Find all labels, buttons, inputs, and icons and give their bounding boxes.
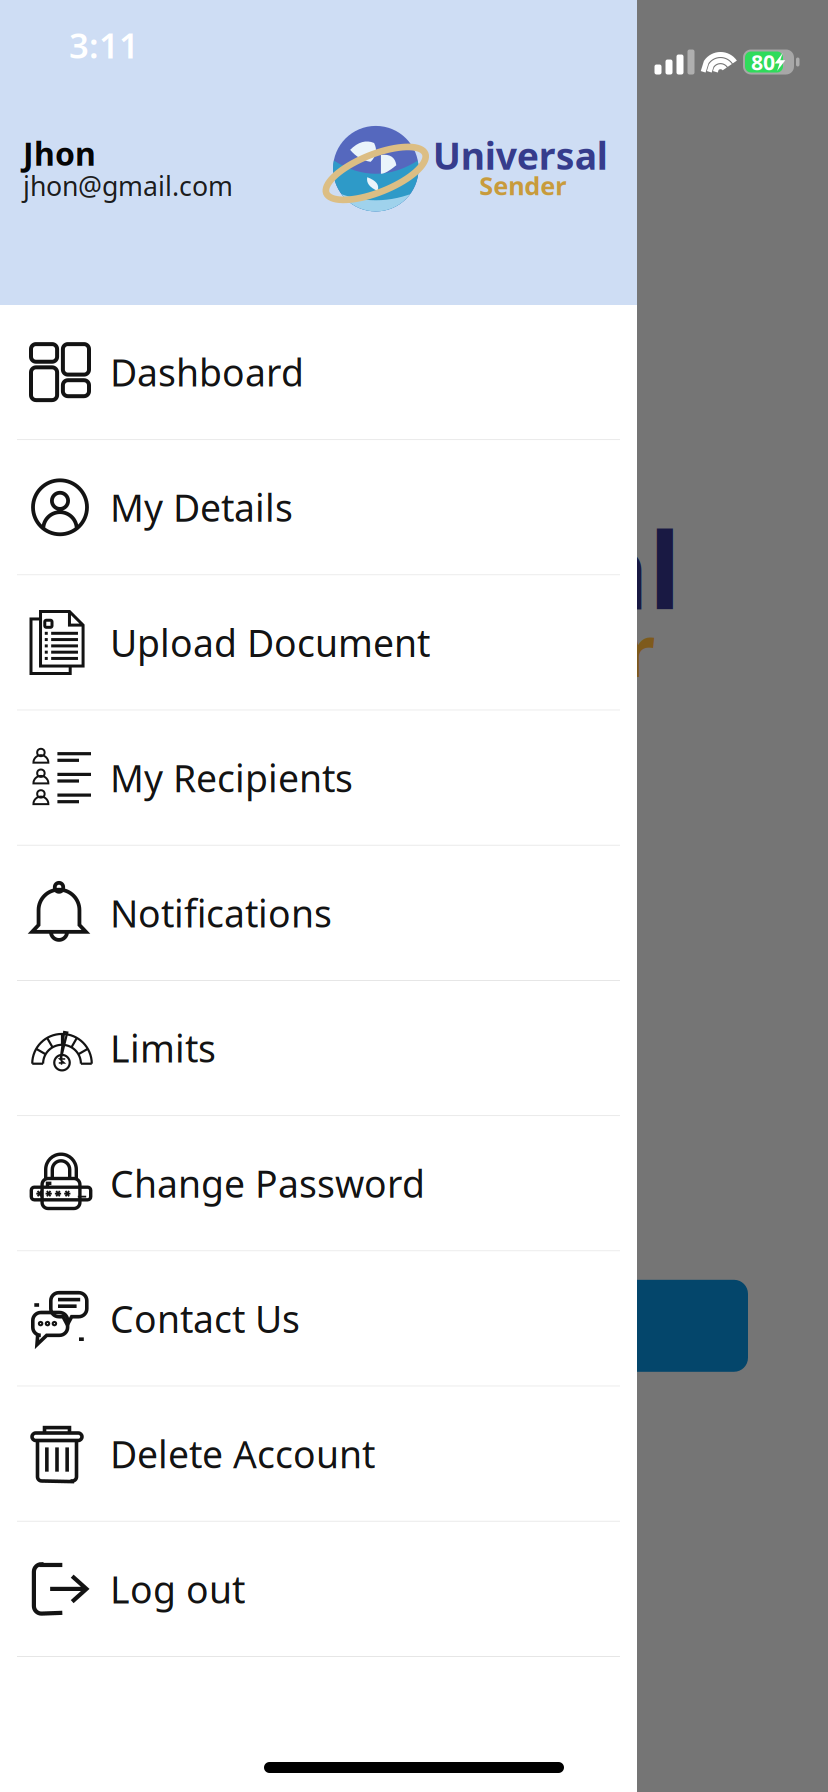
staticText: Universal [176, 497, 681, 639]
staticText: Notifications [110, 888, 332, 938]
button[interactable]: My Recipients [0, 711, 637, 846]
staticText: Send money at the best rates [93, 864, 554, 908]
button[interactable]: SIGN UP [392, 1280, 748, 1372]
staticText: Dashboard [110, 347, 304, 397]
staticText: Change Password [110, 1158, 425, 1208]
staticText: Jhon [23, 132, 96, 174]
staticText: jhon@gmail.com [23, 168, 233, 203]
button[interactable]: Limits [0, 981, 637, 1116]
staticText: My Details [110, 482, 293, 532]
staticText: Log out [110, 1564, 245, 1614]
staticText: Sender [479, 168, 566, 202]
staticText: Contact Us [110, 1294, 300, 1343]
staticText: SIGN IN [132, 1304, 255, 1347]
button[interactable]: SIGN IN [36, 1280, 352, 1372]
button[interactable]: Contact Us [0, 1251, 637, 1387]
staticText: My Recipients [110, 753, 353, 802]
button[interactable]: Log out [0, 1522, 637, 1657]
button[interactable]: My Details [0, 440, 637, 575]
staticText: Sender [404, 601, 655, 697]
staticText: and safely, anytime anywhere [93, 980, 563, 1025]
staticText: Delete Account [110, 1429, 375, 1478]
staticText: 80 [751, 48, 775, 76]
staticText: 3:11 [69, 22, 139, 68]
staticText: to your loved ones effortlessly [93, 922, 568, 967]
button[interactable]: Delete Account [0, 1387, 637, 1522]
button[interactable]: Change Password [0, 1116, 637, 1251]
staticText: Universal [433, 131, 608, 180]
button[interactable]: Upload Document [0, 575, 637, 711]
staticText: Upload Document [110, 618, 430, 667]
button[interactable]: Notifications [0, 846, 637, 981]
staticText: Limits [110, 1023, 216, 1073]
button[interactable]: Dashboard [0, 305, 637, 440]
